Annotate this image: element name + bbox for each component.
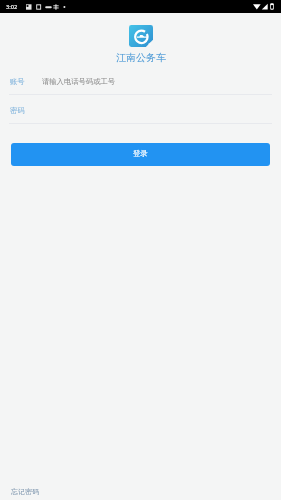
button[interactable]: 账号 — [0, 77, 281, 95]
staticText: 江南公务车 — [116, 51, 166, 64]
staticText: 3:02 — [6, 3, 18, 11]
button[interactable]: 密码 — [0, 106, 281, 124]
button[interactable]: 登录 — [11, 143, 270, 166]
staticText: 账号 — [10, 77, 25, 86]
button[interactable]: 忘记密码 — [11, 487, 39, 496]
staticText: 登录 — [133, 149, 148, 158]
staticText: 请输入电话号码或工号 — [42, 77, 115, 86]
other: 江南公务车 app logo — [129, 25, 153, 47]
staticText: 忘记密码 — [11, 487, 39, 496]
staticText: 密码 — [10, 106, 25, 115]
